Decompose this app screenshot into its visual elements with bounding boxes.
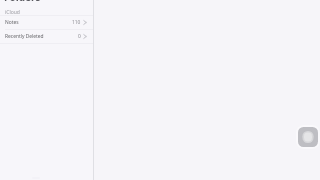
staticText: Folders xyxy=(4,0,41,4)
staticText: Recently Deleted xyxy=(5,33,44,40)
staticText: 110 xyxy=(72,19,81,26)
staticText: Notes xyxy=(5,19,19,26)
button[interactable]: Compose new note xyxy=(298,127,318,147)
button[interactable]: Notes xyxy=(0,16,93,29)
staticText: 0 xyxy=(78,33,81,40)
staticText: iCloud xyxy=(5,9,20,16)
button[interactable]: Recently Deleted xyxy=(0,30,93,43)
